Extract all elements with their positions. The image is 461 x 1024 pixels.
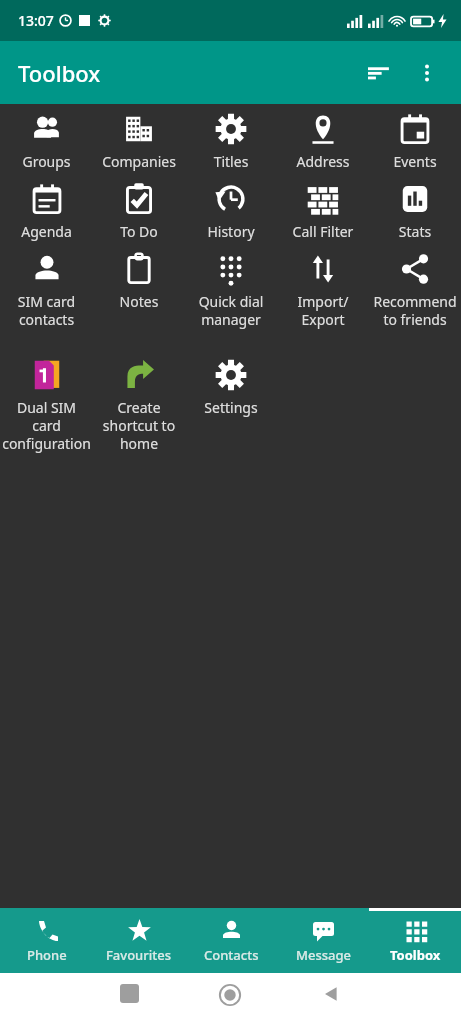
staticText: Create shortcut to home xyxy=(95,398,183,453)
staticText: Settings xyxy=(187,398,275,417)
button[interactable]: Call Filter xyxy=(277,174,369,244)
button[interactable]: Home xyxy=(219,984,241,1006)
button[interactable]: History xyxy=(185,174,277,244)
staticText: Groups xyxy=(2,152,91,171)
button[interactable]: Message xyxy=(277,908,369,973)
button[interactable]: Recents xyxy=(120,984,139,1003)
button[interactable]: Recommend to friends xyxy=(369,244,461,350)
button[interactable]: Back xyxy=(321,984,341,1004)
staticText: Quick dial manager xyxy=(187,292,275,329)
button[interactable]: Contacts xyxy=(185,908,277,973)
button[interactable]: Favourites xyxy=(93,908,185,973)
staticText: Companies xyxy=(95,152,183,171)
staticText: History xyxy=(187,222,275,241)
staticText: To Do xyxy=(95,222,183,241)
button[interactable]: SIM card contacts xyxy=(0,244,93,350)
staticText: Contacts xyxy=(204,946,259,964)
staticText: Agenda xyxy=(2,222,91,241)
staticText: Stats xyxy=(371,222,459,241)
staticText: Events xyxy=(371,152,459,171)
button[interactable]: Titles xyxy=(185,104,277,174)
button[interactable]: Sort xyxy=(355,49,403,97)
button[interactable]: Events xyxy=(369,104,461,174)
button[interactable]: To Do xyxy=(93,174,185,244)
button[interactable]: Groups xyxy=(0,104,93,174)
button[interactable]: Import/ Export xyxy=(277,244,369,350)
staticText: Dual SIM card configuration xyxy=(2,398,91,453)
button[interactable]: Agenda xyxy=(0,174,93,244)
staticText: Favourites xyxy=(106,946,172,964)
staticText: Phone xyxy=(27,946,67,964)
staticText: Import/ Export xyxy=(279,292,367,329)
staticText: Notes xyxy=(95,292,183,311)
button[interactable]: Stats xyxy=(369,174,461,244)
staticText: Address xyxy=(279,152,367,171)
button[interactable]: Settings xyxy=(185,350,277,456)
staticText: Titles xyxy=(187,152,275,171)
button[interactable]: Dual SIM card configuration xyxy=(0,350,93,456)
staticText: Message xyxy=(296,946,351,964)
staticText: SIM card contacts xyxy=(2,292,91,329)
button[interactable]: Toolbox xyxy=(369,908,461,973)
button[interactable]: Notes xyxy=(93,244,185,350)
button[interactable]: More options xyxy=(403,49,451,97)
button[interactable]: Companies xyxy=(93,104,185,174)
button[interactable]: Address xyxy=(277,104,369,174)
staticText: Toolbox xyxy=(18,58,101,88)
staticText: Call Filter xyxy=(279,222,367,241)
button[interactable]: Quick dial manager xyxy=(185,244,277,350)
button[interactable]: Phone xyxy=(0,908,93,973)
staticText: Recommend to friends xyxy=(371,292,459,329)
staticText: 13:07 xyxy=(18,11,54,30)
button[interactable]: Create shortcut to home xyxy=(93,350,185,456)
staticText: Toolbox xyxy=(390,946,441,964)
